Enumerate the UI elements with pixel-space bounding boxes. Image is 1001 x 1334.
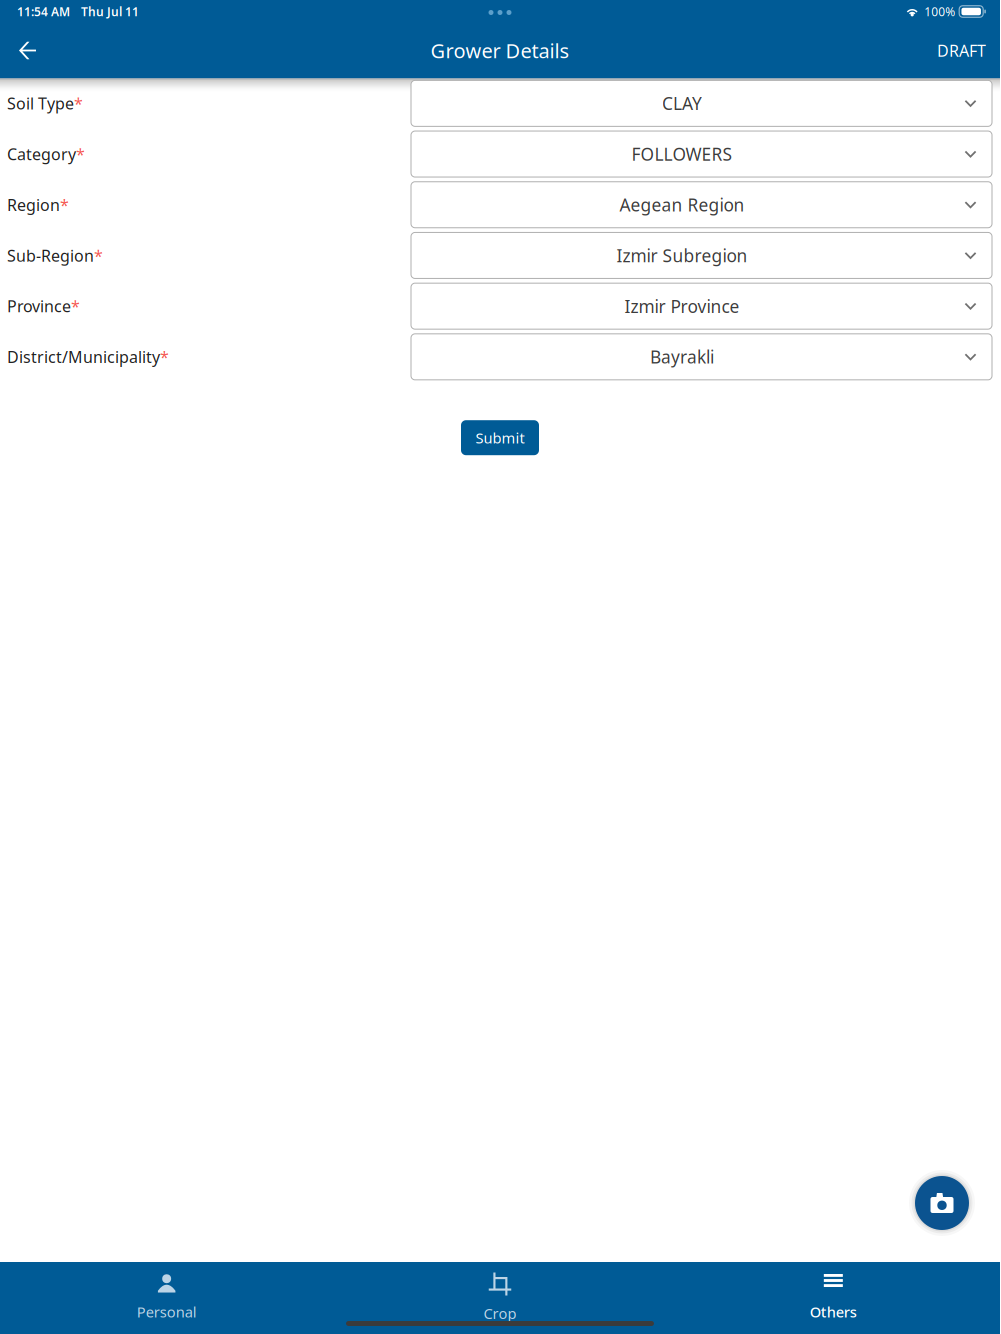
button[interactable]: Others: [667, 1262, 1000, 1334]
button[interactable]: Izmir Subregion: [411, 232, 992, 278]
button[interactable]: Personal: [0, 1262, 333, 1334]
staticText: Region: [7, 194, 60, 215]
staticText: Aegean Region: [619, 193, 744, 216]
staticText: FOLLOWERS: [631, 142, 732, 165]
staticText: Province: [7, 295, 71, 317]
button[interactable]: Camera: [909, 1170, 975, 1236]
staticText: *: [76, 143, 85, 165]
button[interactable]: Submit: [461, 420, 539, 455]
staticText: CLAY: [662, 92, 702, 115]
staticText: Bayrakli: [650, 345, 714, 368]
button[interactable]: Bayrakli: [411, 334, 992, 380]
staticText: 11:54 AM: [17, 3, 70, 19]
button[interactable]: Back: [0, 25, 55, 78]
staticText: DRAFT: [937, 40, 986, 61]
staticText: Personal: [137, 1302, 197, 1321]
staticText: 100%: [924, 3, 955, 19]
staticText: Category: [7, 143, 76, 165]
button[interactable]: DRAFT: [920, 25, 1000, 78]
staticText: Izmir Subregion: [616, 244, 747, 267]
staticText: Izmir Province: [624, 295, 739, 318]
button[interactable]: Izmir Province: [411, 283, 992, 329]
staticText: Crop: [483, 1303, 516, 1323]
staticText: *: [71, 295, 80, 317]
button[interactable]: CLAY: [411, 80, 992, 126]
staticText: District/Municipality: [7, 346, 160, 367]
staticText: *: [160, 346, 169, 367]
staticText: *: [94, 245, 103, 266]
staticText: Sub-Region: [7, 245, 94, 266]
staticText: Others: [810, 1302, 857, 1321]
staticText: *: [74, 93, 83, 114]
staticText: Soil Type: [7, 93, 74, 114]
button[interactable]: Crop: [333, 1262, 667, 1334]
staticText: *: [60, 194, 69, 215]
button[interactable]: Aegean Region: [411, 182, 992, 228]
staticText: Grower Details: [430, 37, 569, 64]
button[interactable]: FOLLOWERS: [411, 131, 992, 177]
staticText: Thu Jul 11: [81, 3, 139, 19]
staticText: Submit: [475, 428, 524, 447]
